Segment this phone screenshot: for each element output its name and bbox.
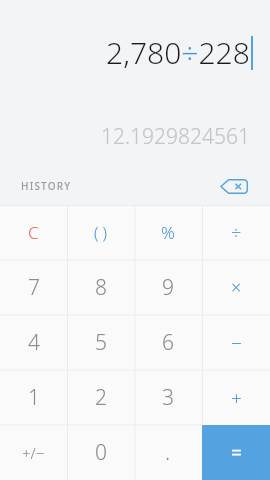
button[interactable]: HISTORY [19,173,74,199]
staticText: × [231,275,242,300]
staticText: +/− [22,443,45,463]
button[interactable]: − [202,315,270,370]
button[interactable]: 4 [0,315,67,370]
staticText: + [231,385,242,411]
staticText: HISTORY [21,179,72,193]
button[interactable]: ÷ [202,205,270,260]
staticText: 2,780÷228 [106,32,250,73]
button[interactable]: 9 [134,260,202,315]
button[interactable]: +/− [0,425,67,480]
staticText: 2 [95,383,107,412]
staticText: = [231,440,242,466]
staticText: 4 [28,328,40,357]
staticText: ( ) [94,222,108,244]
button[interactable]: ( ) [67,205,134,260]
staticText: 1 [28,383,40,412]
button[interactable]: % [134,205,202,260]
button[interactable]: 7 [0,260,67,315]
button[interactable]: = [202,425,270,480]
staticText: 5 [95,328,107,357]
staticText: ÷ [231,220,242,245]
button[interactable]: + [202,370,270,425]
button[interactable]: 8 [67,260,134,315]
button[interactable]: 3 [134,370,202,425]
button[interactable]: 5 [67,315,134,370]
button[interactable]: . [134,425,202,480]
button[interactable]: × [202,260,270,315]
button[interactable]: C [0,205,67,260]
staticText: % [161,221,175,244]
staticText: 0 [95,438,107,467]
staticText: 12.1929824561 [100,122,250,151]
staticText: 3 [162,383,174,412]
button[interactable]: 6 [134,315,202,370]
button[interactable]: 2 [67,370,134,425]
staticText: 7 [28,273,40,302]
staticText: 9 [162,273,174,302]
staticText: C [28,221,39,244]
staticText: − [231,330,242,356]
staticText: 8 [95,273,107,302]
button[interactable]: 1 [0,370,67,425]
staticText: . [165,438,171,467]
button[interactable]: Backspace [217,175,251,197]
staticText: 6 [162,328,174,357]
button[interactable]: 0 [67,425,134,480]
